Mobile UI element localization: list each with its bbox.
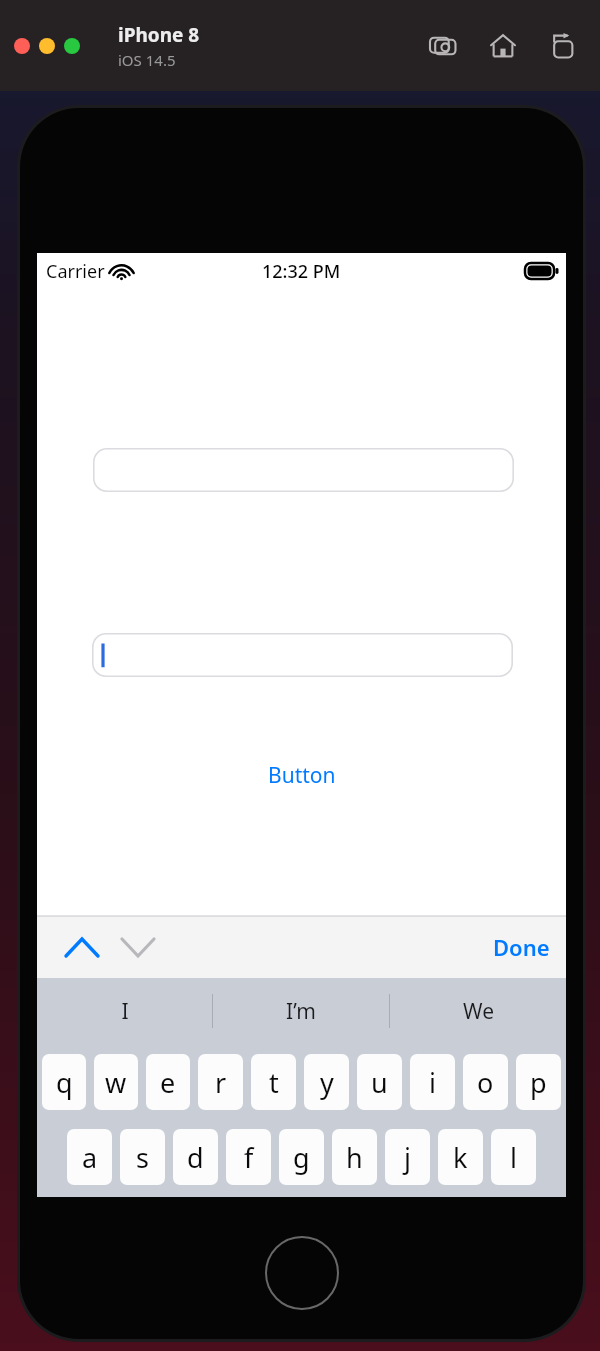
button[interactable]: j (385, 1129, 430, 1185)
button[interactable] (14, 38, 30, 54)
staticText: d (187, 1139, 204, 1176)
button[interactable]: r (198, 1054, 243, 1110)
staticText: Done (493, 932, 550, 962)
button[interactable]: Next field (111, 923, 165, 971)
staticText: s (136, 1139, 149, 1176)
button[interactable] (64, 38, 80, 54)
button[interactable]: f (226, 1129, 271, 1185)
staticText: i (429, 1064, 436, 1101)
button[interactable]: I’m (213, 978, 389, 1044)
button[interactable]: o (463, 1054, 508, 1110)
staticText: q (56, 1064, 73, 1101)
staticText: We (463, 997, 494, 1026)
staticText: I (121, 997, 129, 1026)
button[interactable] (92, 633, 513, 677)
button[interactable]: t (251, 1054, 296, 1110)
staticText: iPhone 8 (118, 22, 200, 48)
staticText: p (530, 1064, 547, 1101)
staticText: k (453, 1139, 468, 1176)
button[interactable]: Button (256, 755, 348, 796)
staticText: u (371, 1064, 388, 1101)
button[interactable]: a (67, 1129, 112, 1185)
staticText: Carrier (46, 259, 105, 284)
button[interactable]: u (357, 1054, 402, 1110)
staticText: e (160, 1064, 176, 1101)
button[interactable]: We (390, 978, 566, 1044)
button[interactable]: w (94, 1054, 138, 1110)
button[interactable]: Rotate (546, 29, 580, 63)
button[interactable]: p (516, 1054, 561, 1110)
staticText: l (510, 1139, 517, 1176)
button[interactable]: Screenshot (426, 29, 460, 63)
staticText: Button (268, 761, 336, 790)
button[interactable]: I (37, 978, 212, 1044)
staticText: 12:32 PM (262, 259, 341, 284)
staticText: g (293, 1139, 310, 1176)
button[interactable]: q (42, 1054, 86, 1110)
button[interactable]: k (438, 1129, 483, 1185)
staticText: o (477, 1064, 494, 1101)
button[interactable]: s (120, 1129, 165, 1185)
staticText: iOS 14.5 (118, 50, 176, 70)
button[interactable]: g (279, 1129, 324, 1185)
staticText: w (105, 1064, 127, 1101)
button[interactable] (39, 38, 55, 54)
staticText: h (346, 1139, 363, 1176)
button[interactable]: y (304, 1054, 349, 1110)
button[interactable] (93, 448, 514, 492)
button[interactable]: Done (477, 922, 566, 972)
staticText: t (269, 1064, 279, 1101)
staticText: a (82, 1139, 98, 1176)
button[interactable]: Previous field (55, 923, 109, 971)
button[interactable]: d (173, 1129, 218, 1185)
staticText: I’m (286, 997, 316, 1026)
staticText: j (404, 1139, 411, 1176)
button[interactable]: e (146, 1054, 190, 1110)
button[interactable]: l (491, 1129, 536, 1185)
button[interactable]: Home (486, 29, 520, 63)
button[interactable]: h (332, 1129, 377, 1185)
button[interactable]: i (410, 1054, 455, 1110)
staticText: r (215, 1064, 227, 1101)
staticText: y (320, 1064, 334, 1101)
staticText: f (244, 1139, 254, 1176)
